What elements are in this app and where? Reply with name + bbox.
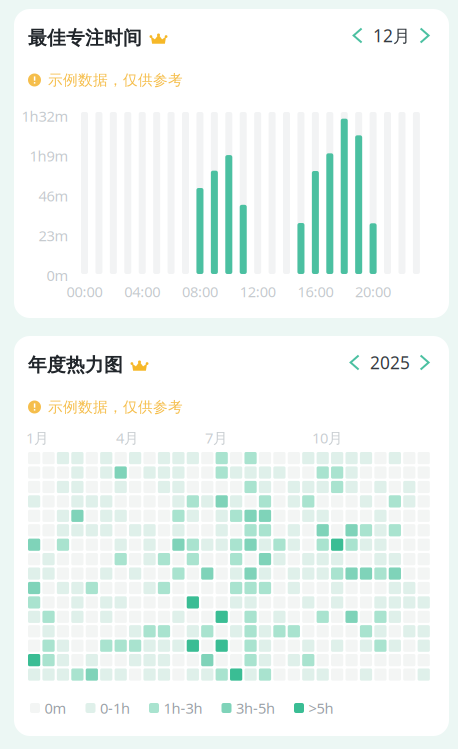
staticText: 0m <box>46 266 68 285</box>
staticText: 年度热力图 <box>28 353 123 376</box>
button[interactable]: 下个月 <box>419 26 431 44</box>
staticText: 0m <box>44 698 66 718</box>
staticText: 3h-5h <box>236 698 275 718</box>
staticText: 4月 <box>116 428 139 447</box>
staticText: 1月 <box>26 428 49 447</box>
staticText: 最佳专注时间 <box>28 26 142 49</box>
button[interactable]: 下一年 <box>419 353 431 371</box>
staticText: 04:00 <box>124 282 160 301</box>
staticText: 10月 <box>312 428 343 447</box>
staticText: >5h <box>308 698 333 718</box>
staticText: 示例数据，仅供参考 <box>48 71 183 89</box>
staticText: 20:00 <box>355 282 391 301</box>
staticText: 16:00 <box>297 282 333 301</box>
staticText: 12月 <box>373 24 410 47</box>
staticText: 23m <box>38 226 68 245</box>
staticText: 1h32m <box>21 106 68 126</box>
staticText: 7月 <box>205 428 228 447</box>
staticText: 1h-3h <box>163 698 202 718</box>
staticText: 00:00 <box>66 282 102 301</box>
button[interactable]: 上个月 <box>352 26 364 44</box>
staticText: 46m <box>38 186 68 205</box>
staticText: 0-1h <box>100 698 130 718</box>
button[interactable]: 上一年 <box>349 353 361 371</box>
staticText: 示例数据，仅供参考 <box>48 398 183 416</box>
staticText: 1h9m <box>29 146 68 166</box>
staticText: 2025 <box>370 351 410 374</box>
staticText: 08:00 <box>182 282 218 301</box>
staticText: 12:00 <box>240 282 276 301</box>
